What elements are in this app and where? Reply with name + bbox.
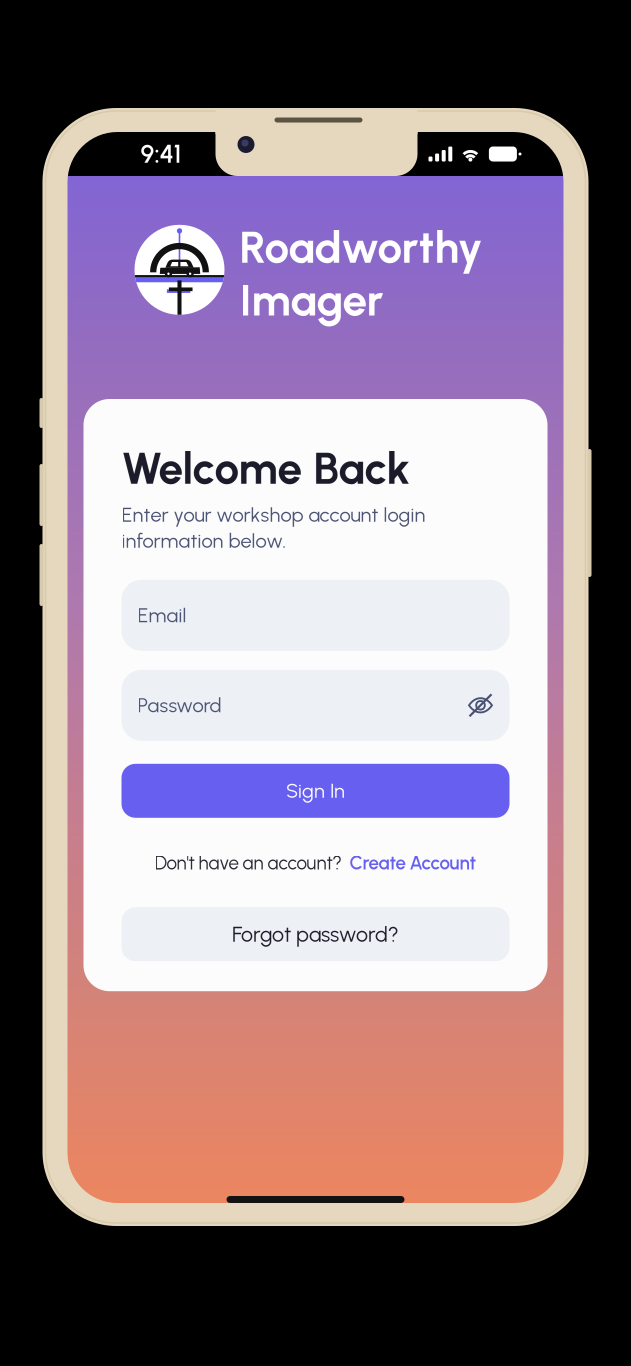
button[interactable]: Create Account — [349, 852, 476, 874]
button[interactable]: Forgot password? — [121, 907, 509, 961]
staticText: Create Account — [349, 852, 476, 874]
staticText: Don't have an account? — [154, 852, 341, 874]
button[interactable]: Sign In — [121, 764, 509, 818]
staticText: Welcome Back — [121, 442, 410, 495]
staticText: 9:41 — [140, 139, 181, 169]
staticText: Sign In — [286, 779, 345, 803]
button[interactable]: Show password — [467, 692, 493, 718]
staticText: Password — [137, 693, 221, 717]
staticText: Email — [137, 603, 186, 627]
staticText: information below. — [121, 529, 286, 553]
staticText: Enter your workshop account login — [121, 503, 425, 527]
staticText: Forgot password? — [232, 921, 399, 947]
staticText: Roadworthy Imager — [239, 221, 482, 327]
